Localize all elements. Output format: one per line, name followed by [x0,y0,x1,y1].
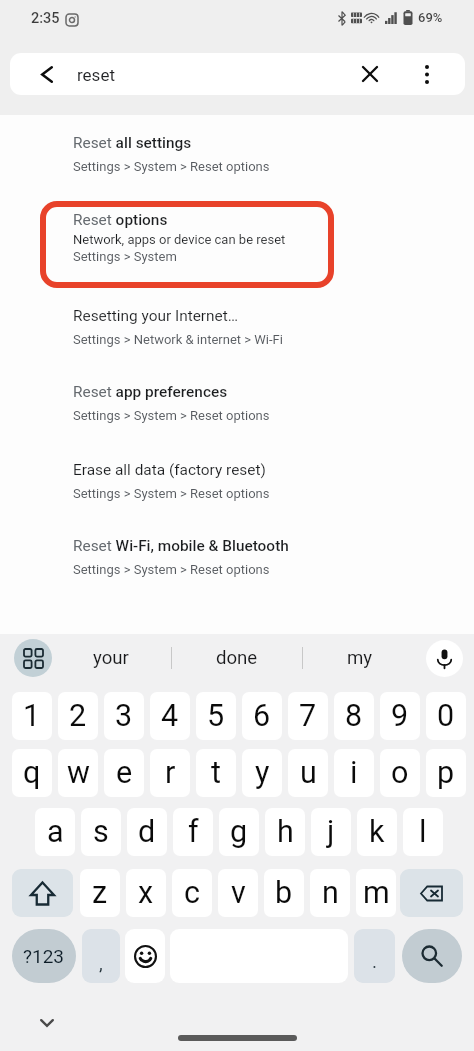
staticText: 7 [299,698,317,734]
button[interactable]: 2 [58,692,98,740]
button[interactable]: d [127,808,167,856]
staticText: y [255,755,270,791]
staticText: your [93,647,129,669]
button[interactable]: f [173,808,213,856]
button[interactable]: Reset all settings [0,134,474,174]
button[interactable]: c [172,869,212,917]
button[interactable]: 1 [12,692,52,740]
staticText: p [437,755,455,791]
button[interactable]: Clipboard [14,639,52,677]
button[interactable]: t [196,749,236,797]
button[interactable]: r [150,749,190,797]
staticText: e [116,755,133,791]
staticText: q [23,755,41,791]
staticText: l [419,814,427,850]
staticText: o [391,755,409,791]
button[interactable]: h [265,808,305,856]
button[interactable]: Reset options [0,211,474,264]
staticText: Reset options [73,211,168,229]
button[interactable]: u [288,749,328,797]
button[interactable]: More options [407,54,447,94]
button[interactable]: 8 [334,692,374,740]
staticText: Settings > System > Reset options [73,486,270,501]
button[interactable]: Hide keyboard [29,1005,65,1041]
staticText: 8 [345,698,363,734]
button[interactable]: z [80,869,120,917]
button[interactable]: m [356,869,396,917]
staticText: b [275,875,293,911]
staticText: Resetting your Internet… [73,307,239,325]
button[interactable]: a [35,808,75,856]
button[interactable]: x [126,869,166,917]
button[interactable]: Clear search [350,54,390,94]
button[interactable]: q [12,749,52,797]
button[interactable]: e [104,749,144,797]
staticText: 9 [391,698,409,734]
button[interactable]: Resetting your Internet… [0,307,474,347]
button[interactable]: your [62,634,160,682]
button[interactable]: j [311,808,351,856]
button[interactable]: Back [27,54,67,94]
button[interactable]: n [310,869,350,917]
staticText: done [216,647,258,669]
staticText: k [369,814,385,850]
button[interactable]: Emoji [125,929,165,983]
button[interactable]: done [180,634,293,682]
staticText: r [165,755,176,791]
button[interactable]: Shift [12,869,73,917]
button[interactable]: 5 [196,692,236,740]
staticText: d [138,814,156,850]
staticText: t [211,755,221,791]
staticText: v [231,875,246,911]
button[interactable]: y [242,749,282,797]
button[interactable]: g [219,808,259,856]
staticText: u [300,755,317,791]
button[interactable]: Search [402,929,462,983]
staticText: 6 [253,698,271,734]
button[interactable]: l [403,808,443,856]
staticText: g [230,814,248,850]
staticText: ?123 [23,945,65,967]
button[interactable]: 4 [150,692,190,740]
staticText: 2:35 [31,10,60,27]
staticText: x [138,875,154,911]
staticText: reset [77,65,115,85]
staticText: j [327,814,335,850]
staticText: 2 [69,698,87,734]
button[interactable]: 9 [380,692,420,740]
staticText: c [184,875,200,911]
staticText: w [67,755,90,791]
staticText: Settings > System > Reset options [73,408,270,423]
button[interactable]: s [81,808,121,856]
staticText: Reset all settings [73,134,192,152]
staticText: Reset Wi-Fi, mobile & Bluetooth [73,537,289,555]
button[interactable]: Voice input [426,640,463,677]
button[interactable]: my [312,634,408,682]
button[interactable]: k [357,808,397,856]
button[interactable]: 7 [288,692,328,740]
button[interactable]: o [380,749,420,797]
button[interactable]: ?123 [12,929,76,983]
button[interactable]: w [58,749,98,797]
button[interactable]: b [264,869,304,917]
button[interactable]: 0 [426,692,466,740]
staticText: i [350,755,358,791]
button[interactable]: i [334,749,374,797]
staticText: Settings > System > Reset options [73,562,270,577]
staticText: Network, apps or device can be reset [73,232,286,247]
button[interactable]: 3 [104,692,144,740]
button[interactable] [10,53,465,95]
staticText: m [363,875,390,911]
button[interactable]: , [82,929,120,983]
button[interactable]: . [354,929,395,983]
button[interactable]: v [218,869,258,917]
button[interactable]: Erase all data (factory reset) [0,461,474,501]
button[interactable]: Reset app preferences [0,383,474,423]
staticText: s [93,814,109,850]
staticText: . [372,950,378,972]
button[interactable]: 6 [242,692,282,740]
button[interactable]: Backspace [400,869,463,917]
button[interactable]: Reset Wi-Fi, mobile & Bluetooth [0,537,474,577]
button[interactable]: p [426,749,466,797]
